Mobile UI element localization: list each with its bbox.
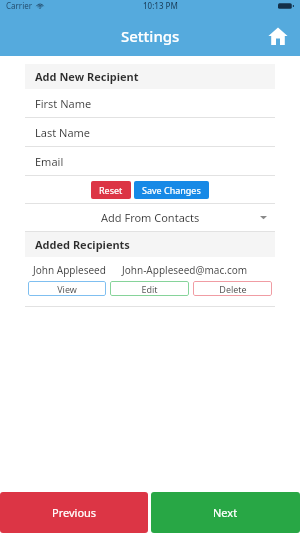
staticText: John Appleseed <box>33 263 106 277</box>
staticText: Added Recipients <box>35 237 130 252</box>
staticText: Edit <box>141 283 158 295</box>
staticText: 10:13 PM <box>143 0 178 11</box>
staticText: Email <box>35 154 64 169</box>
staticText: Settings <box>121 26 180 46</box>
staticText: John-Appleseed@mac.com <box>122 263 248 277</box>
staticText: View <box>57 283 77 295</box>
staticText: First Name <box>35 96 92 111</box>
staticText: Reset <box>99 184 123 196</box>
staticText: Previous <box>52 505 97 520</box>
button[interactable]: Delete <box>193 281 272 296</box>
staticText: Last Name <box>35 125 91 140</box>
button[interactable]: Save Changes <box>134 181 209 199</box>
button[interactable]: Next <box>151 492 300 533</box>
button[interactable]: Previous <box>0 492 148 533</box>
button[interactable]: Reset <box>91 181 131 199</box>
button[interactable]: First Name <box>25 89 275 117</box>
staticText: Next <box>213 505 238 520</box>
button[interactable]: Email <box>25 147 275 175</box>
staticText: Save Changes <box>142 184 201 196</box>
staticText: Delete <box>219 283 247 295</box>
button[interactable]: View <box>28 281 106 296</box>
staticText: Add From Contacts <box>101 210 200 225</box>
button[interactable]: Edit <box>110 281 189 296</box>
staticText: Add New Recipient <box>35 69 139 84</box>
button[interactable]: Add From Contacts <box>25 204 275 231</box>
button[interactable]: Home <box>264 22 292 50</box>
staticText: Carrier <box>6 0 33 11</box>
button[interactable]: Last Name <box>25 118 275 146</box>
